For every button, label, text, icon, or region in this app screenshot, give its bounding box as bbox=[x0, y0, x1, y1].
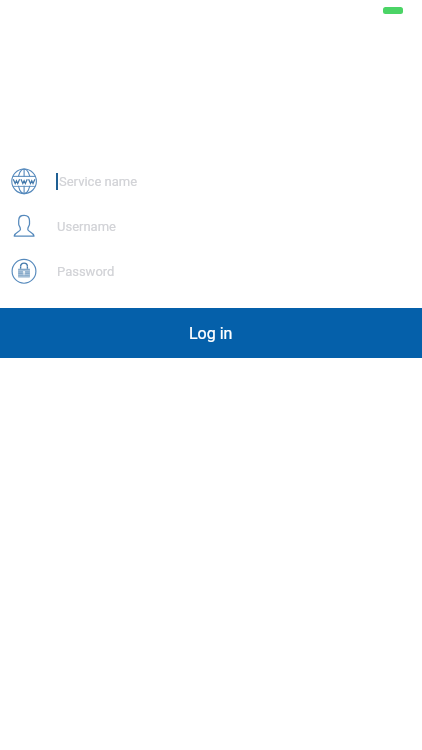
staticText: Username bbox=[57, 219, 116, 234]
other: Connection status bbox=[383, 7, 403, 14]
staticText: Service name bbox=[59, 174, 138, 189]
button[interactable]: Password bbox=[0, 249, 422, 293]
button[interactable]: Service name bbox=[0, 159, 422, 203]
staticText: Password bbox=[57, 264, 115, 279]
button[interactable]: Log in bbox=[0, 308, 422, 358]
staticText: Log in bbox=[189, 324, 233, 343]
button[interactable]: Username bbox=[0, 204, 422, 248]
